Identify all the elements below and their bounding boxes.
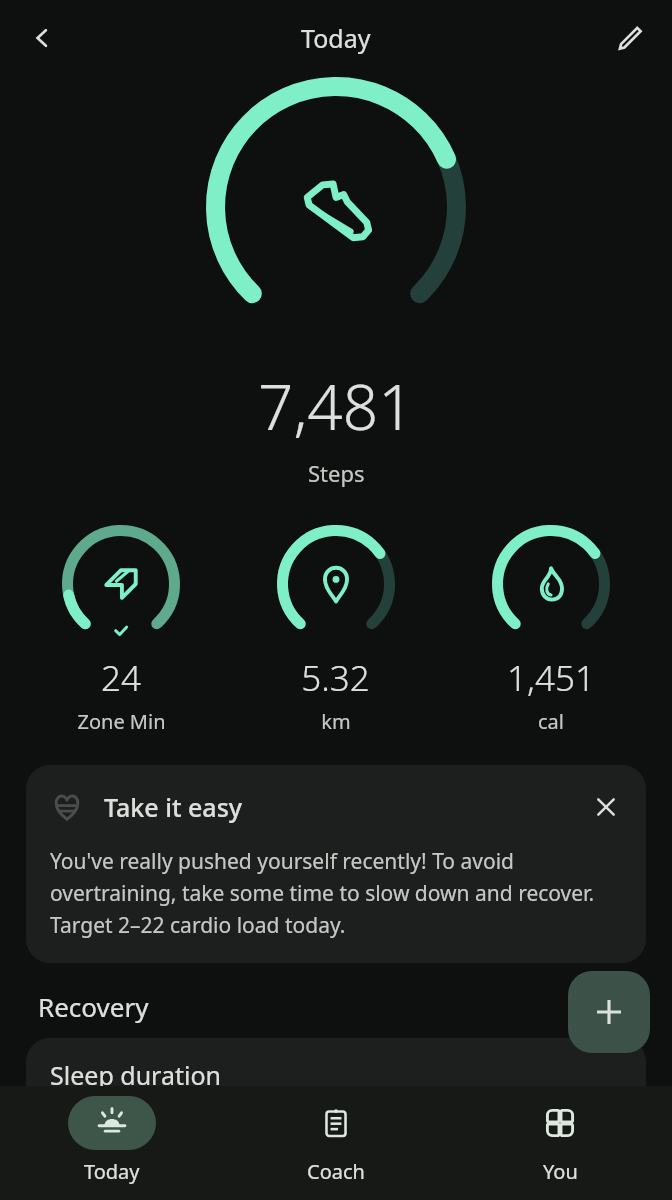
button[interactable]: Dismiss [584,785,628,829]
staticText: 7,481 [258,364,414,448]
staticText: 24 [101,654,141,702]
staticText: cal [538,708,564,735]
staticText: You've really pushed yourself recently! … [50,847,628,939]
staticText: Zone Min [77,708,166,735]
button[interactable]: Coach [224,1086,448,1185]
staticText: km [321,708,351,735]
button[interactable]: Today [0,1086,224,1185]
button[interactable]: Back [14,10,70,66]
button[interactable]: Edit [602,10,658,66]
staticText: 1,451 [507,654,595,702]
button[interactable]: 1,451 [443,522,658,735]
staticText: Take it easy [104,790,584,824]
button[interactable]: 5.32 [228,522,443,735]
staticText: Today [301,21,371,55]
staticText: You [543,1158,578,1185]
button[interactable]: 24 [14,522,228,735]
button[interactable]: Sleep duration [26,1038,646,1118]
button[interactable]: Take it easy [26,765,646,963]
staticText: Coach [307,1158,365,1185]
staticText: Recovery [38,989,149,1024]
staticText: Steps [308,458,365,488]
button[interactable]: Add [568,971,650,1053]
button[interactable]: You [448,1086,672,1185]
staticText: Today [84,1158,140,1185]
staticText: 5.32 [301,654,370,702]
staticText: Sleep duration [50,1058,221,1092]
